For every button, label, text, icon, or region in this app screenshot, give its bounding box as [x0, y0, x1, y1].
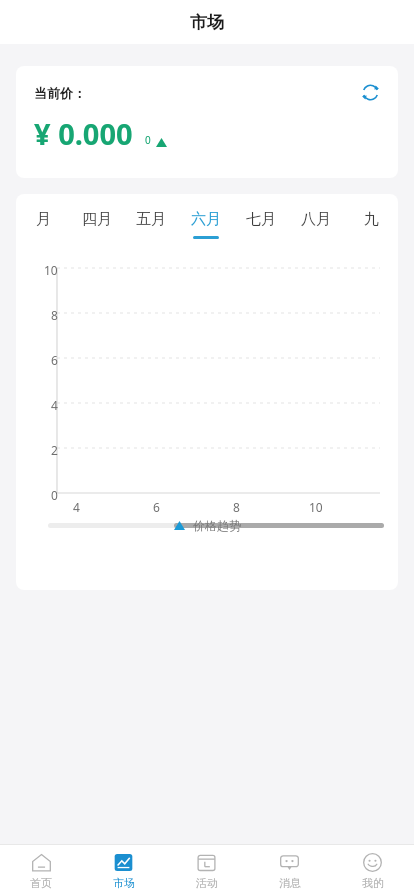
staticText: 八月 — [301, 210, 331, 229]
button[interactable]: 消息 — [248, 845, 331, 896]
staticText: 活动 — [196, 876, 218, 890]
staticText: 10 — [44, 262, 58, 278]
staticText: 首页 — [30, 876, 52, 890]
staticText: 市场 — [113, 876, 135, 890]
button[interactable]: 活动 — [165, 845, 248, 896]
button[interactable]: 市场 — [82, 845, 165, 896]
button[interactable]: 月 — [16, 194, 70, 254]
button[interactable]: 八月 — [288, 194, 343, 254]
staticText: 七月 — [246, 210, 276, 229]
staticText: ¥ 0.000 — [34, 114, 133, 153]
button[interactable]: 四月 — [70, 194, 124, 254]
staticText: 月 — [36, 210, 51, 229]
staticText: 六月 — [191, 210, 221, 229]
staticText: 8 — [233, 499, 240, 515]
button[interactable]: 五月 — [124, 194, 178, 254]
staticText: 市场 — [190, 12, 224, 33]
staticText: 0 — [145, 133, 151, 147]
staticText: 8 — [51, 307, 58, 323]
staticText: 0 — [51, 487, 58, 503]
staticText: 消息 — [279, 876, 301, 890]
button[interactable]: Refresh — [356, 78, 384, 106]
staticText: 五月 — [136, 210, 166, 229]
staticText: 价格趋势 — [193, 518, 241, 533]
staticText: 6 — [51, 352, 58, 368]
button[interactable]: 七月 — [233, 194, 288, 254]
staticText: 当前价： — [34, 85, 86, 101]
staticText: 我的 — [362, 876, 384, 890]
staticText: 6 — [153, 499, 160, 515]
button[interactable]: 六月 — [178, 194, 233, 254]
button[interactable]: 首页 — [0, 845, 82, 896]
button[interactable]: 我的 — [331, 845, 414, 896]
staticText: 10 — [309, 499, 323, 515]
staticText: 4 — [73, 499, 80, 515]
staticText: 九 — [364, 210, 379, 229]
staticText: 4 — [51, 397, 58, 413]
staticText: 2 — [51, 442, 58, 458]
button[interactable]: 九 — [343, 194, 398, 254]
staticText: 四月 — [82, 210, 112, 229]
